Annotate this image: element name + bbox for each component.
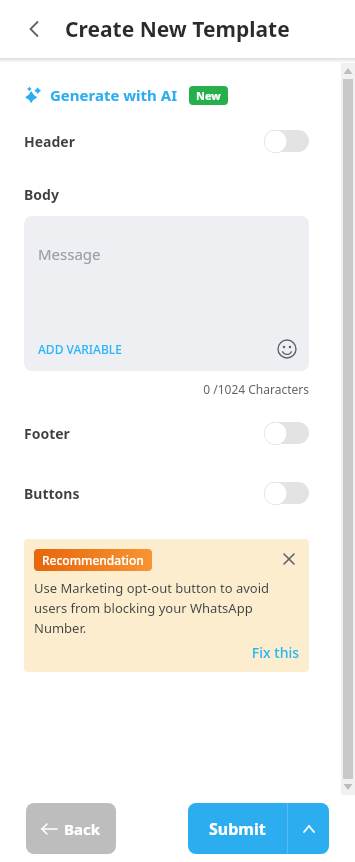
staticText: Create New Template [65, 15, 290, 44]
button[interactable]: More options [288, 803, 329, 854]
button[interactable]: Submit [188, 803, 287, 854]
button[interactable]: Generate with AI [24, 83, 228, 107]
staticText: New [196, 88, 221, 103]
staticText: Generate with AI [50, 85, 177, 105]
button[interactable]: Emoji [277, 339, 297, 359]
button[interactable]: Back [26, 803, 116, 854]
button[interactable]: Header toggle [264, 129, 309, 153]
staticText: Buttons [24, 484, 80, 503]
staticText: Message [38, 244, 101, 264]
staticText: Use Marketing opt-out button to avoid us… [34, 579, 299, 637]
button[interactable]: Footer toggle [264, 421, 309, 445]
button[interactable]: Close [279, 549, 299, 569]
staticText: Recommendation [42, 552, 144, 568]
button[interactable]: Buttons toggle [264, 481, 309, 505]
staticText: Back [64, 819, 101, 839]
staticText: 0 /1024 Characters [24, 381, 309, 397]
staticText: Header [24, 132, 75, 151]
button[interactable]: Fix this [34, 643, 299, 662]
staticText: Footer [24, 424, 70, 443]
staticText: Submit [209, 818, 266, 840]
button[interactable]: Message [24, 216, 309, 371]
staticText: Body [24, 185, 59, 204]
button[interactable]: Back [16, 12, 50, 46]
button[interactable]: ADD VARIABLE [38, 341, 122, 357]
